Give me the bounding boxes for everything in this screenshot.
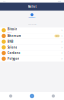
staticText: › <box>61 51 62 55</box>
staticText: Your assets <box>27 23 36 25</box>
staticText: Bitcoin <box>7 27 17 31</box>
staticText: Cardano <box>7 51 20 55</box>
staticText: Wallet <box>27 5 36 8</box>
staticText: Ethereum <box>7 34 21 38</box>
staticText: › <box>61 28 62 32</box>
button[interactable]: Home <box>0 92 21 100</box>
staticText: 9:41 <box>3 0 6 2</box>
button[interactable]: Cardano <box>0 50 64 56</box>
button[interactable]: Wallet <box>21 92 43 100</box>
button[interactable]: Profile <box>43 92 64 100</box>
staticText: › <box>61 34 62 38</box>
staticText: BNB <box>7 40 13 43</box>
staticText: ▮▮▮ <box>58 0 61 2</box>
staticText: › <box>61 57 62 60</box>
button[interactable]: Ethereum <box>0 33 64 39</box>
staticText: › <box>61 46 62 49</box>
staticText: Connect <box>28 17 35 18</box>
staticText: › <box>61 40 62 43</box>
button[interactable]: Bitcoin <box>0 27 64 33</box>
staticText: Polygon <box>7 57 19 60</box>
button[interactable]: Polygon <box>0 56 64 61</box>
button[interactable]: Solana <box>0 45 64 50</box>
staticText: NEW <box>56 35 59 37</box>
staticText: Solana <box>7 46 17 49</box>
staticText: -2.41% <box>7 31 11 33</box>
button[interactable]: BNB <box>0 39 64 44</box>
